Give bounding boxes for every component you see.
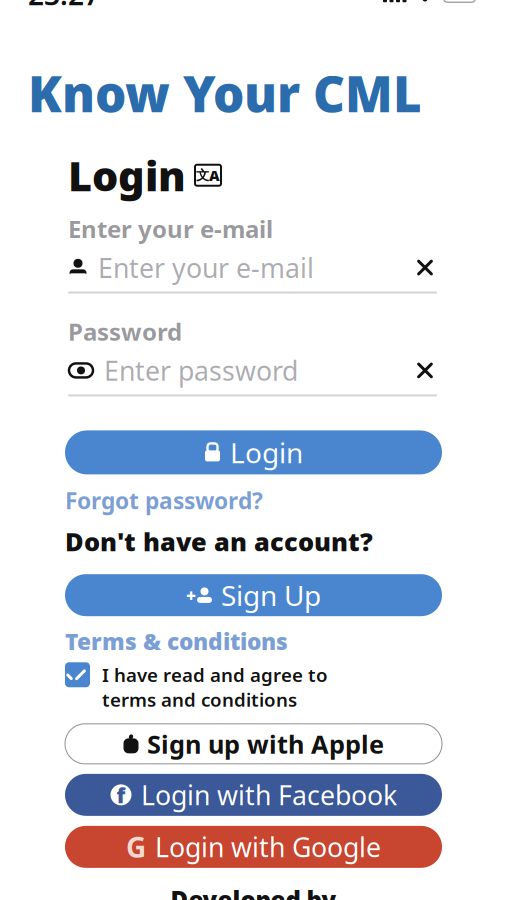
staticText: Know Your CML [28,60,422,126]
staticText: I have read and agree to terms and condi… [102,662,328,712]
staticText: Password [68,316,182,347]
button[interactable]: f [65,774,442,816]
staticText: 文 [196,167,209,183]
staticText: Login with Facebook [141,777,397,812]
staticText: f [116,781,125,809]
staticText: Terms & conditions [65,626,288,656]
staticText: Enter your e-mail [68,213,273,245]
staticText: Login with Google [155,829,381,864]
staticText: Enter your e-mail [98,250,314,285]
staticText: G [126,828,146,865]
staticText: Forgot password? [65,485,263,515]
staticText: Don't have an account? [65,524,373,558]
staticText: Login [230,434,303,471]
staticText: A [209,165,220,185]
staticText: Login [68,148,186,203]
staticText: Enter password [104,353,298,388]
staticText: + [186,584,196,607]
staticText: Developed by [170,884,336,900]
button[interactable]: Clear Enter your e-mail [413,256,437,280]
button[interactable]: + [65,574,442,616]
button[interactable]: I have read and agree to terms and condi… [65,662,507,712]
staticText: Sign Up [221,577,321,614]
button[interactable]: Sign up with Apple [65,724,442,764]
button[interactable]: Login [65,430,442,474]
button[interactable]: G [65,826,442,868]
staticText: Sign up with Apple [147,727,384,761]
button[interactable]: Forgot password? [65,485,263,515]
button[interactable]: Terms & conditions [65,626,288,656]
staticText: 23:27 [28,0,100,13]
button[interactable]: Clear Password [413,358,437,382]
